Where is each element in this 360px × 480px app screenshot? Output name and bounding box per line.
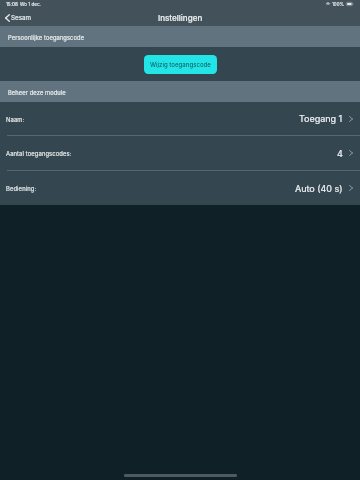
staticText: Wijzig toegangscode [150, 61, 211, 68]
staticText: Wo 1 dec. [20, 2, 41, 8]
button[interactable]: Aantal toegangscodes: [0, 136, 360, 170]
button[interactable]: Naam: [0, 102, 360, 135]
staticText: 100% [332, 2, 344, 7]
staticText: 15:08 [6, 2, 18, 7]
staticText: Persoonlijke toegangscode [8, 34, 85, 41]
staticText: Sesam [11, 14, 31, 22]
button[interactable]: Wijzig toegangscode [144, 55, 217, 74]
staticText: 4 [337, 148, 343, 159]
button[interactable]: Back to Sesam [0, 12, 37, 25]
staticText: Aantal toegangscodes: [6, 150, 72, 157]
staticText: Toegang 1 [299, 113, 343, 124]
button[interactable]: Bediening: [0, 171, 360, 205]
staticText: Auto (40 s) [295, 183, 343, 194]
staticText: Beheer deze module [8, 89, 66, 96]
staticText: Instellingen [158, 13, 203, 23]
staticText: Bediening: [6, 185, 37, 192]
staticText: Naam: [6, 116, 25, 123]
